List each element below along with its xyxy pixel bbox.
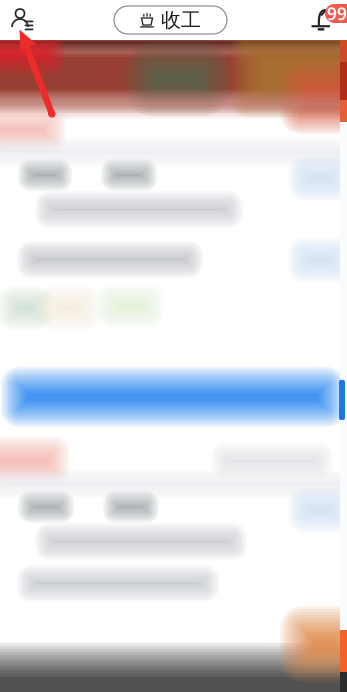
button[interactable]: Rider profile — [4, 0, 42, 40]
staticText: 收工 — [161, 8, 201, 32]
staticText: 99+ — [327, 2, 347, 25]
button[interactable]: Notifications — [299, 0, 343, 40]
button[interactable]: 收工 — [114, 6, 227, 34]
